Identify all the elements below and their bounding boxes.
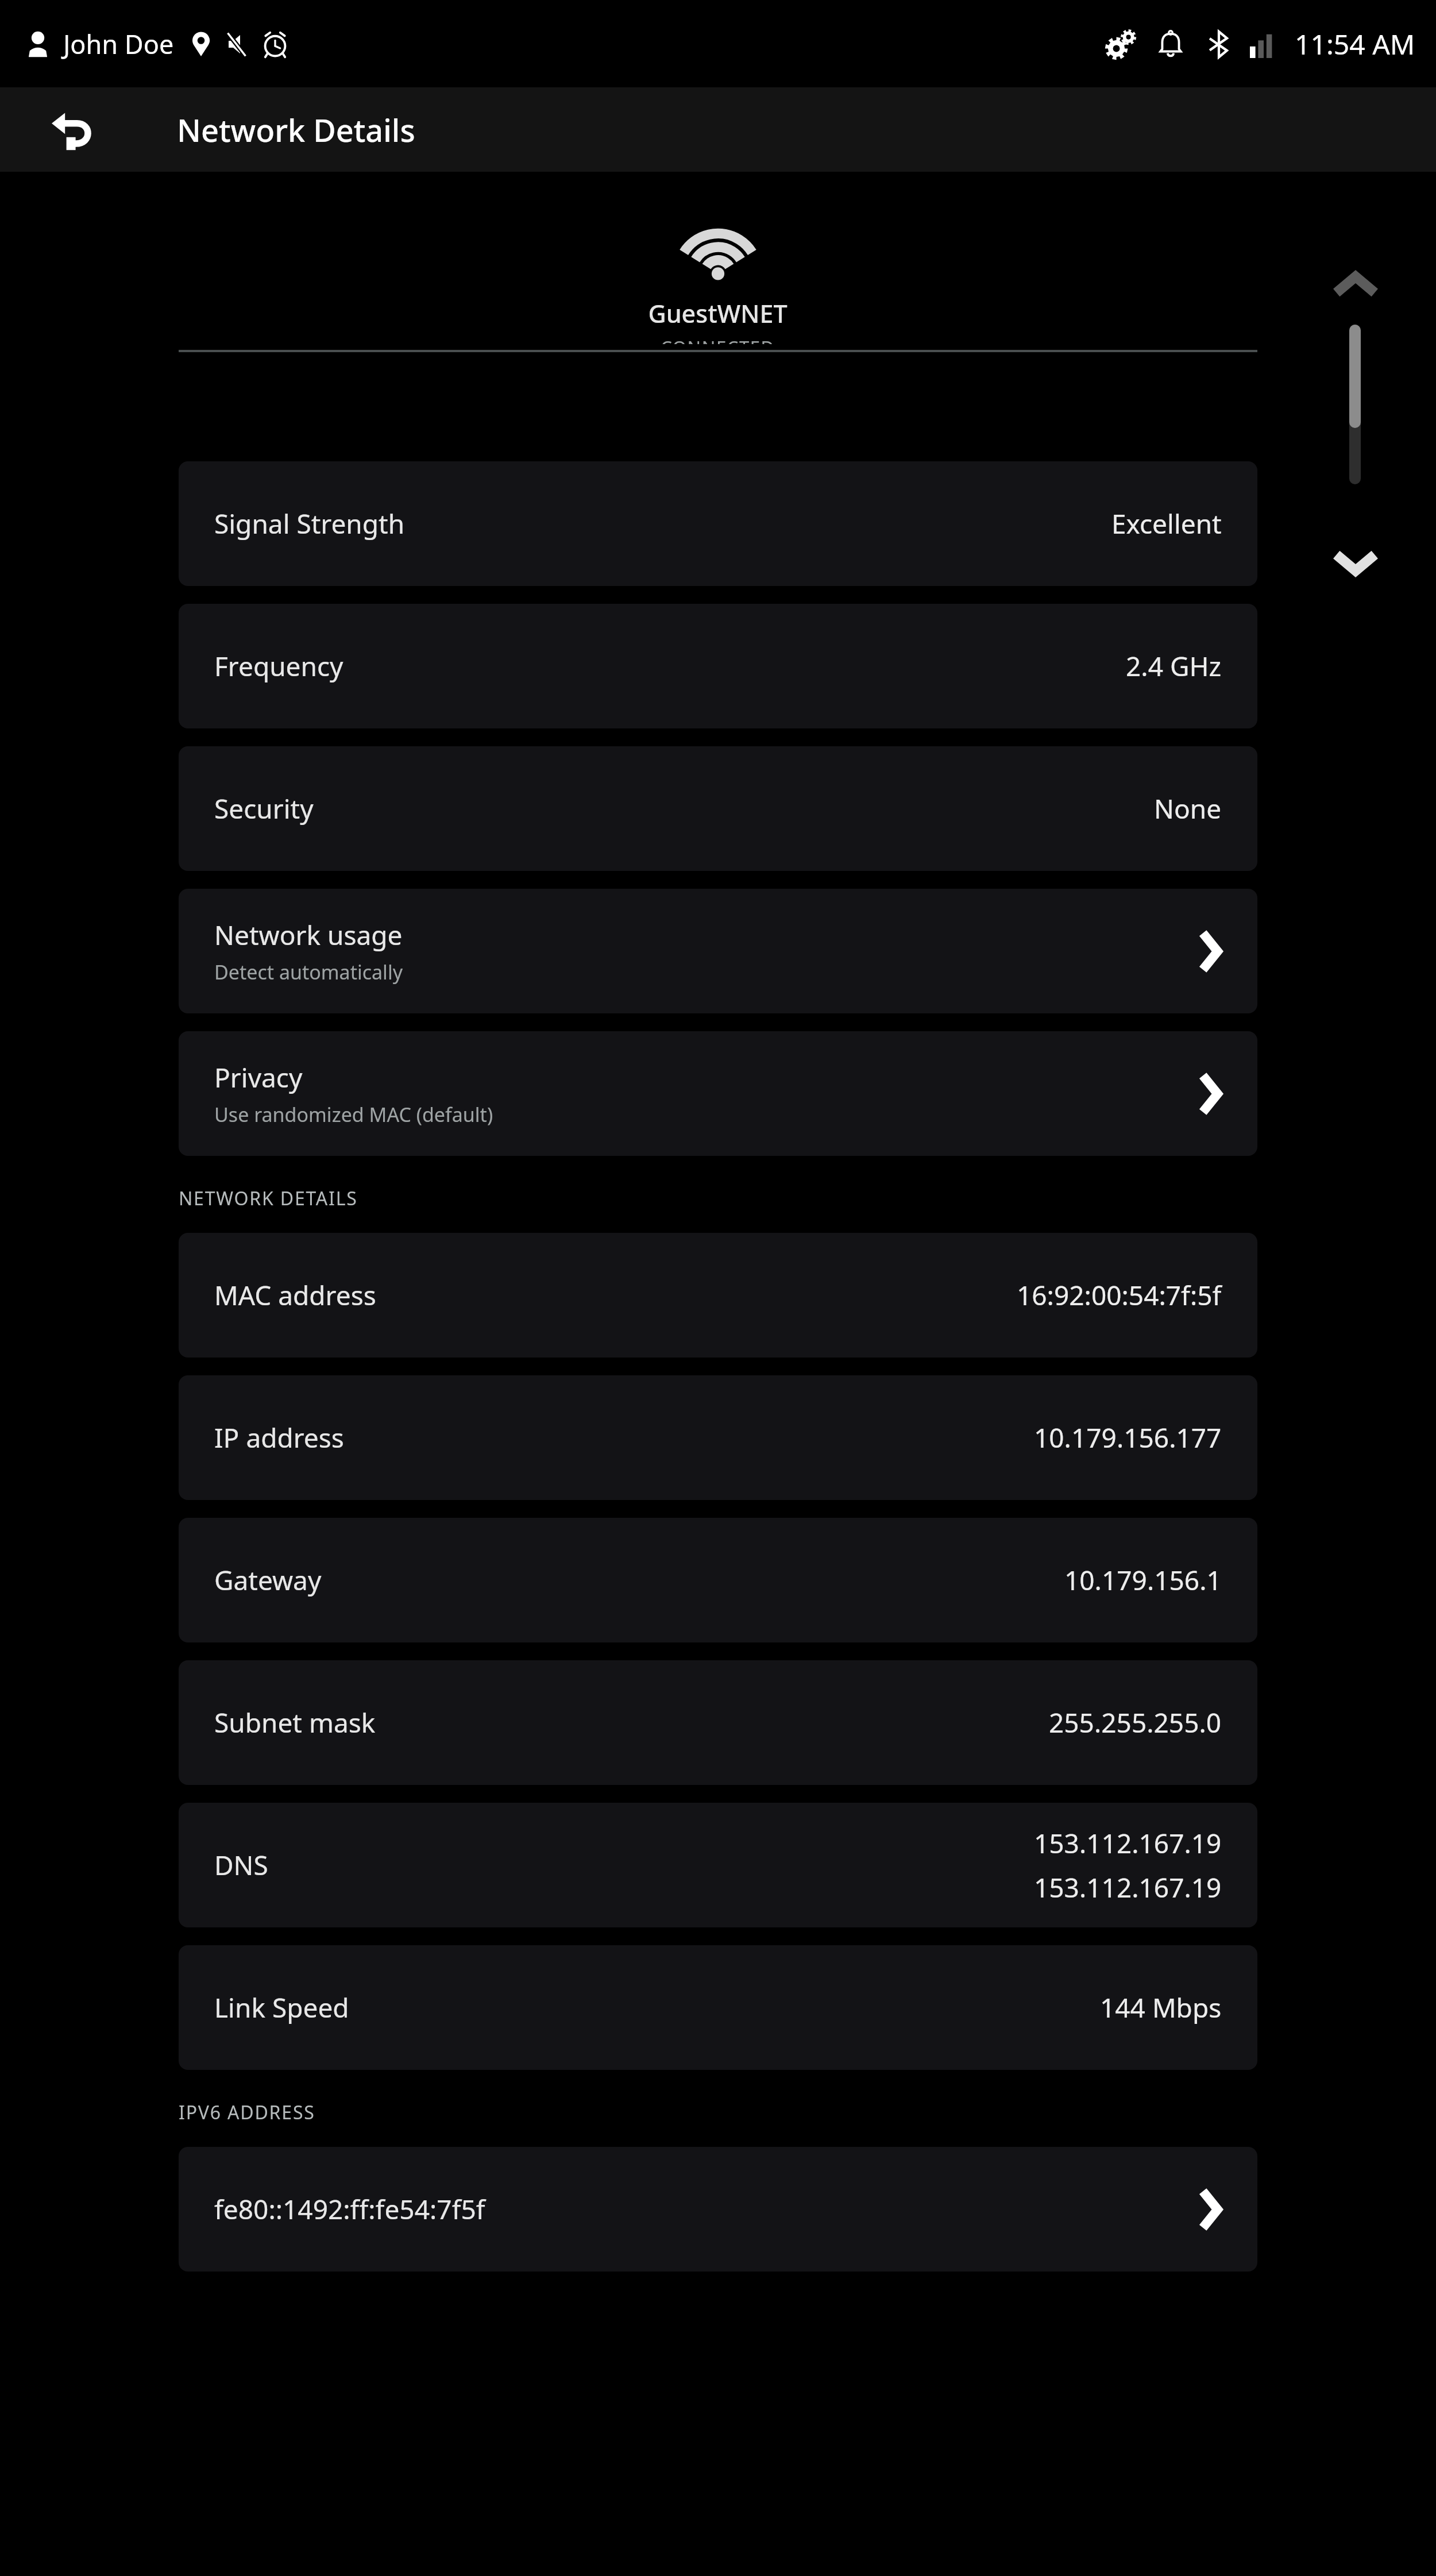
button[interactable]: Back [45, 102, 100, 157]
button[interactable]: DNS [179, 1803, 1257, 1927]
button[interactable]: Security [179, 746, 1257, 871]
staticText: 255.255.255.0 [1049, 1705, 1222, 1741]
button[interactable]: Gateway [179, 1518, 1257, 1642]
staticText: 11:54 AM [1295, 25, 1415, 63]
button[interactable]: Privacy [179, 1031, 1257, 1156]
staticText: 144 Mbps [1100, 1989, 1222, 2026]
button[interactable]: Subnet mask [179, 1660, 1257, 1785]
staticText: Security [214, 790, 314, 827]
staticText: None [1154, 790, 1222, 827]
staticText: 2.4 GHz [1126, 648, 1222, 684]
button[interactable]: Scroll down [1321, 531, 1390, 595]
staticText: Link Speed [214, 1989, 349, 2026]
staticText: Gateway [214, 1562, 322, 1598]
button[interactable]: IP address [179, 1375, 1257, 1500]
staticText: DNS [214, 1847, 268, 1883]
staticText: 10.179.156.1 [1064, 1562, 1222, 1598]
button[interactable]: Network usage [179, 889, 1257, 1013]
staticText: Excellent [1111, 506, 1222, 542]
staticText: CONNECTED [661, 335, 775, 344]
staticText: Frequency [214, 648, 343, 684]
staticText: IP address [214, 1420, 344, 1456]
button[interactable]: Scroll up [1321, 253, 1390, 316]
staticText: Detect automatically [214, 959, 403, 985]
staticText: John Doe [63, 26, 174, 61]
staticText: Privacy [214, 1059, 303, 1096]
staticText: 10.179.156.177 [1034, 1420, 1222, 1456]
staticText: MAC address [214, 1277, 376, 1313]
staticText: NETWORK DETAILS [179, 1186, 358, 1211]
button[interactable]: Signal Strength [179, 461, 1257, 586]
staticText: Subnet mask [214, 1705, 376, 1741]
staticText: GuestWNET [648, 296, 788, 330]
button[interactable]: fe80::1492:ff:fe54:7f5f [179, 2147, 1257, 2272]
staticText: 153.112.167.19 [1034, 1869, 1222, 1906]
staticText: Signal Strength [214, 506, 405, 542]
staticText: IPV6 ADDRESS [179, 2100, 315, 2125]
staticText: Network Details [177, 109, 415, 151]
button[interactable]: Frequency [179, 604, 1257, 728]
button[interactable]: Link Speed [179, 1945, 1257, 2070]
button[interactable]: MAC address [179, 1233, 1257, 1358]
staticText: fe80::1492:ff:fe54:7f5f [214, 2191, 485, 2227]
staticText: Network usage [214, 917, 403, 953]
staticText: 153.112.167.19 [1034, 1825, 1222, 1861]
staticText: 16:92:00:54:7f:5f [1017, 1277, 1222, 1313]
staticText: Use randomized MAC (default) [214, 1101, 493, 1128]
